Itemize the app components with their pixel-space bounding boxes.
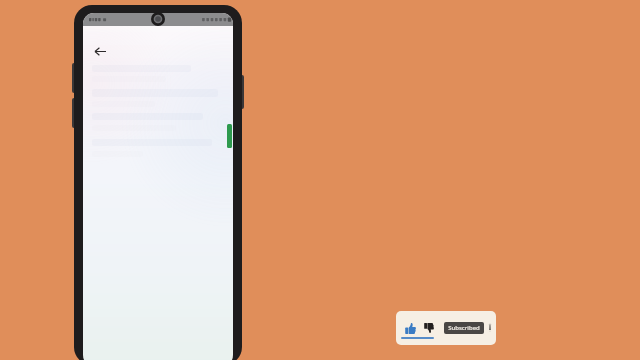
button[interactable]: Dislike <box>421 317 437 339</box>
button[interactable]: Back <box>91 42 109 60</box>
button[interactable]: Subscribed <box>444 322 484 334</box>
staticText: Subscribed <box>448 324 480 332</box>
button[interactable]: Notifications <box>489 317 491 339</box>
button[interactable]: Like <box>402 317 418 339</box>
